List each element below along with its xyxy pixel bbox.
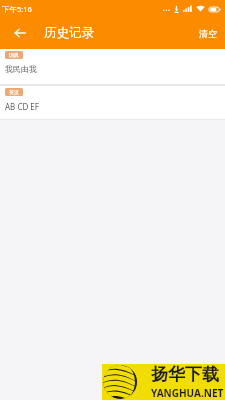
- staticText: 我民由我: [5, 64, 37, 74]
- button[interactable]: 清空: [191, 22, 225, 45]
- staticText: 清空: [199, 28, 217, 39]
- staticText: 历史记录: [44, 25, 94, 41]
- staticText: AB CD EF: [5, 101, 39, 112]
- staticText: 英汉: [9, 89, 19, 95]
- button[interactable]: 词典: [0, 49, 225, 84]
- staticText: YANGHUA.NET: [151, 386, 224, 400]
- button[interactable]: 英汉: [0, 86, 225, 119]
- button[interactable]: Back: [9, 22, 31, 44]
- staticText: 扬华下载: [151, 364, 219, 385]
- staticText: 词典: [9, 52, 19, 58]
- staticText: 下午5:16: [2, 4, 32, 14]
